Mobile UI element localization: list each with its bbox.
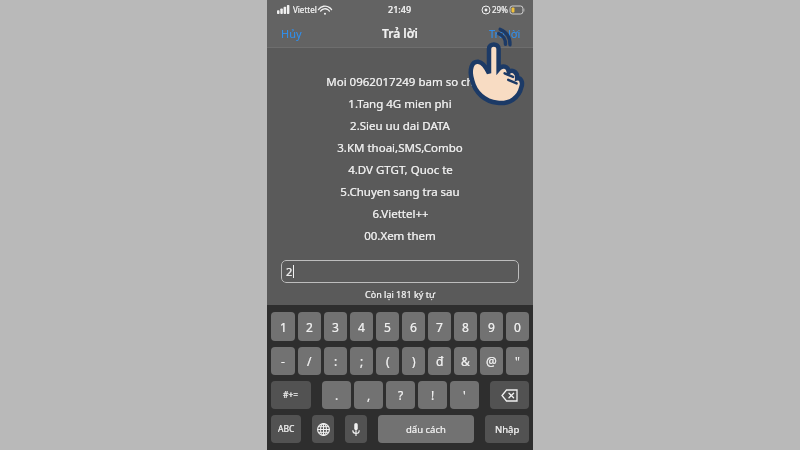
button[interactable]: / <box>298 347 321 375</box>
staticText: 2 <box>306 319 313 335</box>
staticText: 9 <box>488 319 495 335</box>
button[interactable]: & <box>454 347 477 375</box>
staticText: 3 <box>332 319 339 335</box>
staticText: 6 <box>410 319 417 335</box>
staticText: 5 <box>384 319 391 335</box>
button[interactable]: : <box>324 347 347 375</box>
button[interactable]: #+= <box>271 381 311 409</box>
button[interactable]: 6 <box>402 312 425 341</box>
staticText: 2.Sieu uu dai DATA <box>350 118 450 134</box>
staticText: & <box>461 353 470 369</box>
button[interactable]: - <box>271 347 295 375</box>
staticText: ? <box>398 387 404 403</box>
button[interactable]: Trả lời <box>477 21 533 46</box>
button[interactable]: 9 <box>480 312 503 341</box>
staticText: ( <box>386 353 390 369</box>
staticText: 3.KM thoai,SMS,Combo <box>337 140 463 156</box>
button[interactable]: ? <box>386 381 415 409</box>
button[interactable]: Nhập <box>485 415 529 443</box>
staticText: / <box>307 353 312 369</box>
staticText: 00.Xem them <box>364 228 436 244</box>
staticText: 5.Chuyen sang tra sau <box>340 184 460 200</box>
staticText: ) <box>412 353 416 369</box>
button[interactable]: 1 <box>271 312 295 341</box>
staticText: 2 <box>286 264 293 279</box>
staticText: 29% <box>492 4 508 15</box>
button[interactable]: 7 <box>428 312 451 341</box>
staticText: - <box>281 353 285 369</box>
button[interactable]: ( <box>376 347 399 375</box>
button[interactable]: @ <box>480 347 503 375</box>
staticText: 8 <box>462 319 469 335</box>
button[interactable]: đ <box>428 347 451 375</box>
staticText: Moi 0962017249 bam so ch <box>326 74 474 90</box>
staticText: Nhập <box>495 423 520 436</box>
staticText: ABC <box>278 423 295 435</box>
staticText: Trả lời <box>489 26 521 41</box>
button[interactable]: 8 <box>454 312 477 341</box>
staticText: 1.Tang 4G mien phi <box>348 96 452 112</box>
button[interactable]: Voice input <box>345 415 367 443</box>
button[interactable]: dấu cách <box>378 415 474 443</box>
staticText: , <box>367 387 371 403</box>
staticText: : <box>334 353 338 369</box>
button[interactable]: 3 <box>324 312 347 341</box>
staticText: Viettel <box>293 4 317 15</box>
button[interactable]: 0 <box>506 312 529 341</box>
staticText: dấu cách <box>406 423 446 436</box>
staticText: @ <box>486 353 497 369</box>
button[interactable]: ! <box>418 381 447 409</box>
button[interactable]: Hủy <box>267 21 316 46</box>
staticText: Trả lời <box>382 25 419 41</box>
staticText: 4.DV GTGT, Quoc te <box>348 162 453 178</box>
button[interactable]: ) <box>402 347 425 375</box>
button[interactable]: 2 <box>298 312 321 341</box>
staticText: 4 <box>358 319 365 335</box>
button[interactable]: Backspace <box>490 381 529 409</box>
staticText: " <box>515 353 520 369</box>
button[interactable]: ' <box>450 381 479 409</box>
staticText: Còn lại 181 ký tự <box>267 288 533 300</box>
staticText: Hủy <box>281 26 302 41</box>
button[interactable]: . <box>322 381 351 409</box>
button[interactable]: " <box>506 347 529 375</box>
staticText: 21:49 <box>388 3 412 15</box>
button[interactable]: ; <box>350 347 373 375</box>
button[interactable]: 5 <box>376 312 399 341</box>
staticText: 6.Viettel++ <box>372 206 429 222</box>
staticText: . <box>335 387 339 403</box>
button[interactable]: Change keyboard language <box>312 415 334 443</box>
staticText: đ <box>436 353 444 369</box>
button[interactable]: 4 <box>350 312 373 341</box>
button[interactable]: , <box>354 381 383 409</box>
staticText: 0 <box>514 319 521 335</box>
staticText: 7 <box>436 319 443 335</box>
staticText: ' <box>463 387 466 403</box>
staticText: 1 <box>280 319 287 335</box>
button[interactable]: 2 <box>281 260 519 283</box>
staticText: ; <box>360 353 364 369</box>
button[interactable]: ABC <box>271 415 301 443</box>
staticText: ! <box>431 387 435 403</box>
staticText: #+= <box>283 389 299 401</box>
